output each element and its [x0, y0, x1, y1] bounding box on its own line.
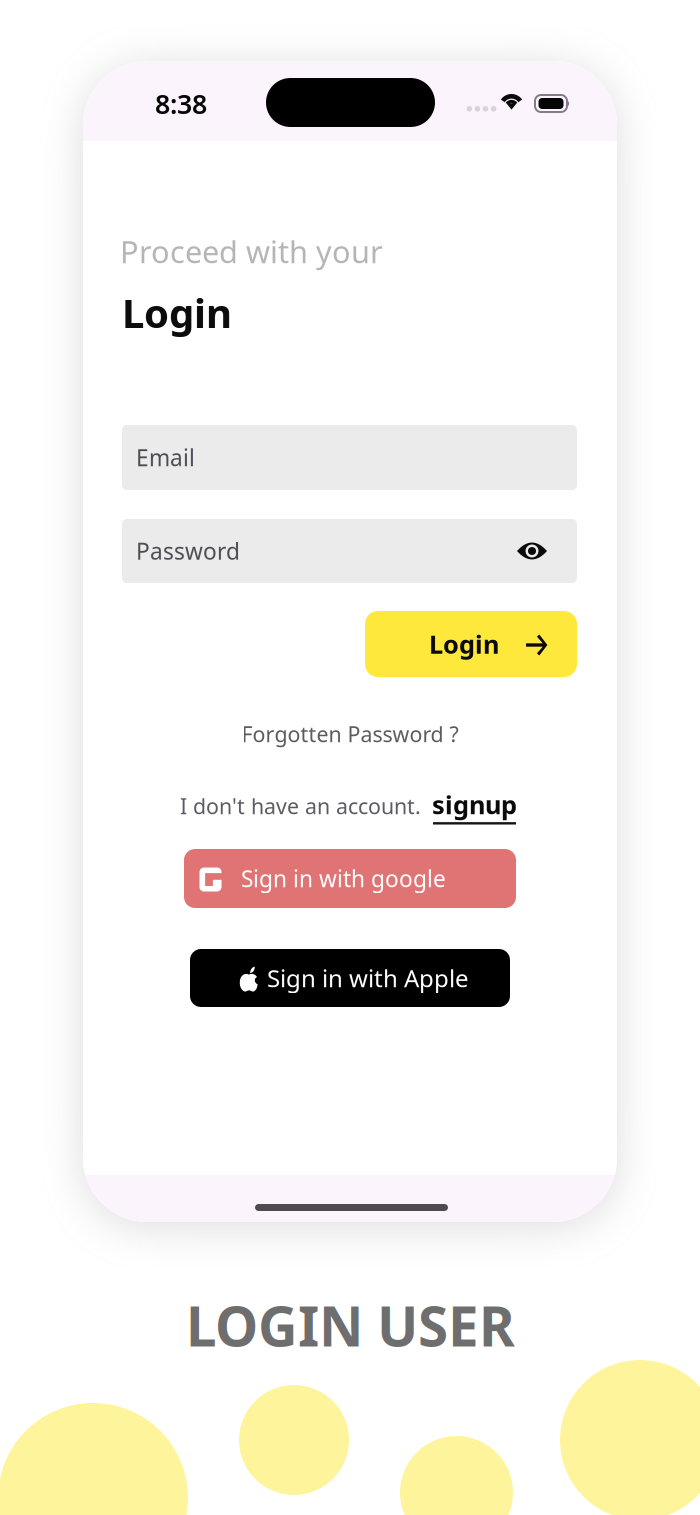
staticText: signup: [432, 787, 517, 821]
staticText: Sign in with Apple: [267, 962, 469, 994]
button[interactable]: signup: [432, 787, 517, 824]
button[interactable]: Login: [365, 611, 577, 677]
staticText: I don't have an account.: [180, 792, 421, 820]
staticText: Password: [136, 536, 240, 566]
staticText: Proceed with your: [120, 231, 383, 272]
staticText: Email: [136, 442, 195, 472]
button[interactable]: Password: [122, 519, 577, 583]
button[interactable]: Email: [122, 425, 577, 490]
button[interactable]: Sign in with google: [184, 849, 516, 908]
staticText: Login: [122, 286, 232, 339]
button[interactable]: Forgotten Password ?: [225, 718, 475, 750]
staticText: Sign in with google: [241, 863, 446, 893]
staticText: Login: [429, 627, 499, 661]
staticText: LOGIN USER: [186, 1289, 515, 1362]
button[interactable]: Sign in with Apple: [190, 949, 510, 1007]
staticText: Forgotten Password ?: [241, 720, 458, 748]
staticText: 8:38: [155, 86, 207, 121]
